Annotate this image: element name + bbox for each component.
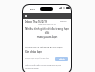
staticText: www.example.co.uk [23, 23, 71, 26]
staticText: Chúng tôi có thể giúp gì cho bạn? [25, 45, 63, 48]
staticText: Nếu có thắc mắc xin vui lòng liên hệ với… [25, 64, 69, 70]
staticText: Gửi đi [59, 58, 65, 61]
staticText: Chọn một mục ở trên đây [25, 57, 49, 60]
button[interactable]: Gửi đi [55, 57, 68, 61]
staticText: Xin chào bạn [25, 50, 42, 54]
button[interactable]: Inbox Thu 16/2/19 [25, 20, 67, 23]
button[interactable]: Menu [23, 13, 71, 19]
staticText: Details [60, 20, 67, 23]
staticText: Nhiều tính giới với đa trang hạn đối man… [24, 27, 70, 39]
staticText: 9:41 [30, 7, 35, 10]
staticText: Xem thêm chi tiết [23, 36, 71, 38]
staticText: Inbox Thu 16/2/19 [25, 20, 48, 23]
